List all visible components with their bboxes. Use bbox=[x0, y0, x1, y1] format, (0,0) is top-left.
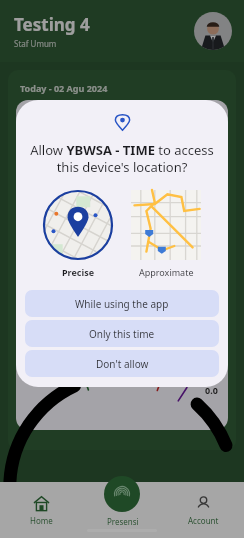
staticText: Account bbox=[188, 515, 219, 526]
staticText: Home bbox=[30, 515, 53, 526]
staticText: Staf Umum bbox=[14, 38, 57, 49]
button[interactable]: Only this time bbox=[25, 320, 219, 347]
button[interactable]: While using the app bbox=[25, 290, 219, 317]
staticText: Presensi bbox=[107, 516, 139, 527]
button[interactable]: Presensi fingerprint bbox=[104, 476, 140, 512]
button[interactable]: Don't allow bbox=[25, 350, 219, 377]
button[interactable]: Account bbox=[163, 482, 244, 538]
button[interactable]: Presensi bbox=[82, 482, 163, 538]
staticText: Testing 4 bbox=[14, 13, 90, 36]
staticText: Only this time bbox=[89, 327, 155, 341]
staticText: Today - 02 Agu 2024 bbox=[20, 82, 108, 94]
staticText: Precise bbox=[62, 266, 95, 278]
staticText: Allow YBWSA - TIME to access this device… bbox=[28, 141, 216, 176]
button[interactable]: Profile bbox=[194, 12, 232, 50]
staticText: While using the app bbox=[75, 297, 169, 311]
staticText: 0.0 bbox=[205, 384, 218, 396]
button[interactable]: Home bbox=[0, 482, 82, 538]
staticText: Don't allow bbox=[96, 357, 149, 371]
staticText: Approximate bbox=[139, 266, 194, 278]
